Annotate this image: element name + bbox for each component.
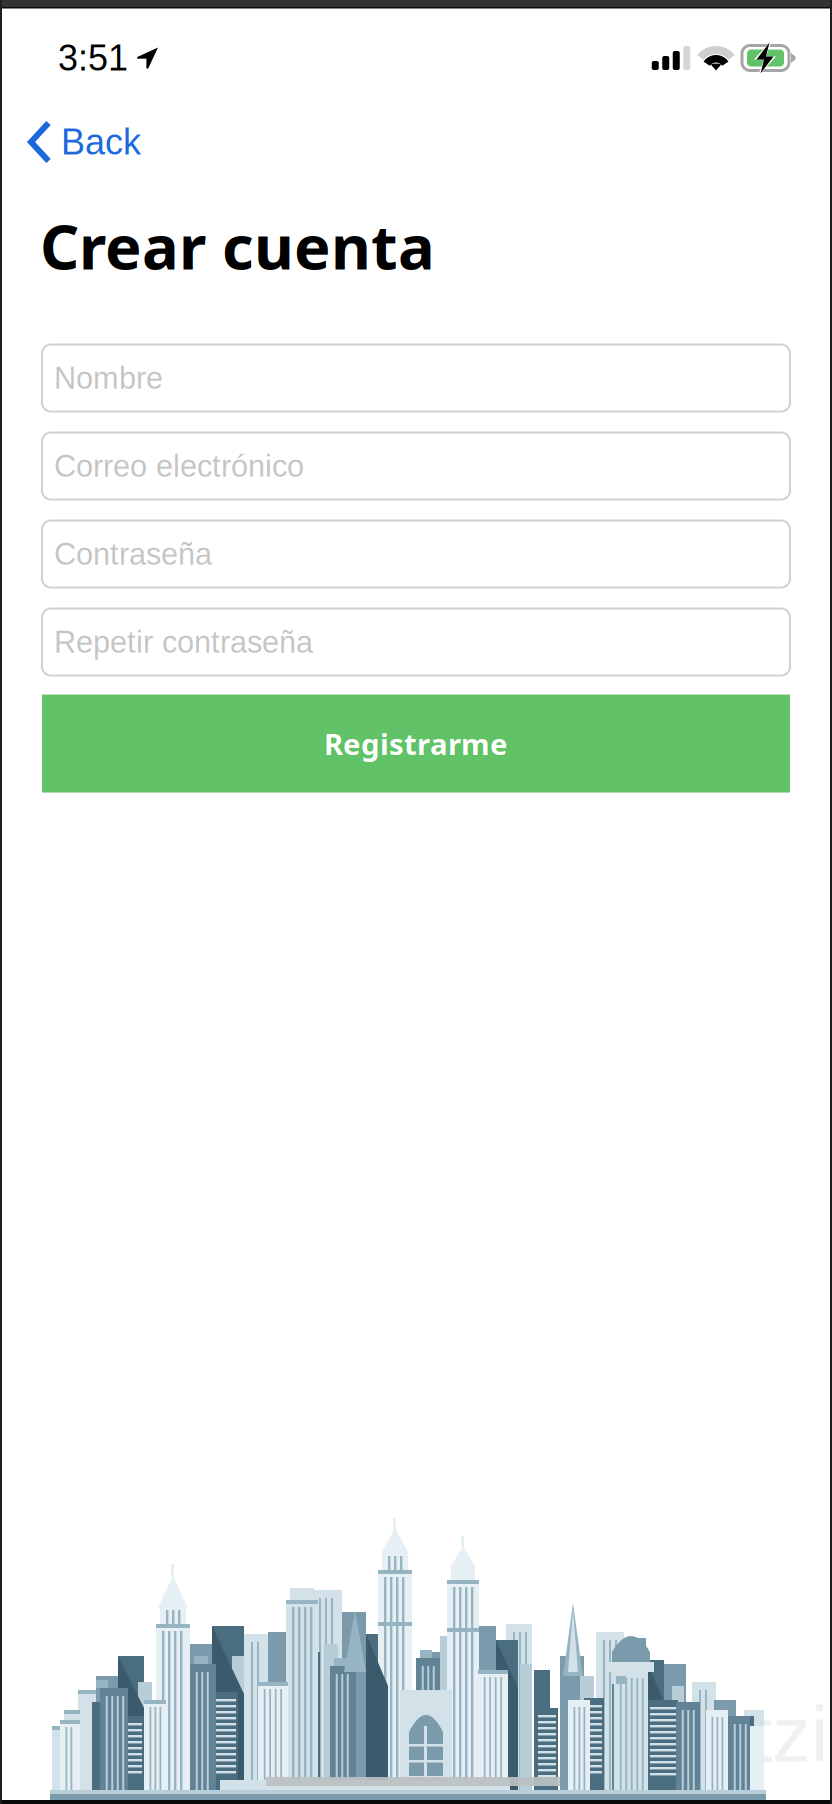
- staticText: atzi: [708, 1692, 828, 1778]
- button[interactable]: Back: [0, 108, 141, 175]
- staticText: Repetir contraseña: [54, 625, 313, 659]
- staticText: Correo electrónico: [54, 449, 304, 483]
- staticText: Contraseña: [54, 537, 212, 571]
- staticText: Nombre: [54, 361, 163, 395]
- staticText: 3:51: [58, 38, 128, 78]
- staticText: Registrarme: [324, 724, 508, 764]
- staticText: Crear cuenta: [40, 204, 435, 287]
- staticText: Back: [61, 122, 141, 162]
- button[interactable]: Registrarme: [42, 694, 790, 792]
